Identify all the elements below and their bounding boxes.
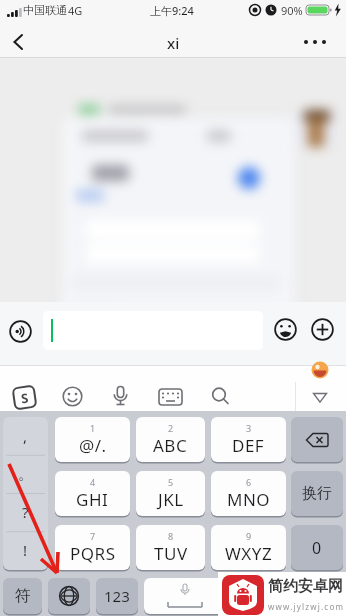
staticText: 中国联通 (23, 3, 67, 17)
button[interactable]: 6 (211, 471, 286, 516)
button[interactable]: 8 (136, 525, 205, 570)
button[interactable] (311, 318, 334, 341)
button[interactable] (274, 318, 297, 341)
staticText: 简约安卓网 (268, 577, 343, 596)
staticText: 1 (90, 422, 96, 434)
button[interactable]: 1 (55, 417, 130, 462)
staticText: 3 (246, 422, 252, 434)
button[interactable]: 123 (96, 578, 138, 614)
staticText: MNO (227, 488, 271, 511)
button[interactable] (144, 578, 225, 614)
button[interactable]: 2 (136, 417, 205, 462)
button[interactable] (48, 578, 90, 614)
button[interactable]: 0 (291, 525, 343, 570)
staticText: ! (23, 540, 28, 560)
staticText: 8 (168, 530, 174, 542)
staticText: JKL (158, 488, 184, 511)
button[interactable] (312, 392, 328, 404)
button[interactable]: S (10, 383, 39, 412)
button[interactable] (291, 417, 343, 462)
staticText: WXYZ (225, 542, 273, 565)
staticText: 0 (312, 537, 322, 559)
staticText: 2 (168, 422, 174, 434)
button[interactable] (110, 385, 131, 408)
button[interactable] (210, 386, 231, 407)
staticText: 90% (281, 3, 303, 18)
button[interactable]: 3 (211, 417, 286, 462)
staticText: 123 (104, 586, 130, 606)
staticText: 4G (68, 3, 83, 18)
button[interactable]: , (3, 417, 48, 570)
staticText: ABC (153, 434, 188, 457)
button[interactable]: 4 (55, 471, 130, 516)
staticText: PQRS (70, 542, 116, 565)
staticText: xi (167, 33, 180, 53)
button[interactable] (12, 34, 26, 50)
staticText: 7 (90, 530, 96, 542)
staticText: DEF (232, 434, 265, 457)
button[interactable]: 9 (211, 525, 286, 570)
staticText: ? (22, 502, 29, 522)
staticText: S (20, 388, 30, 407)
button[interactable] (43, 311, 263, 350)
button[interactable] (303, 36, 329, 48)
staticText: GHI (76, 488, 109, 511)
staticText: 换行 (302, 484, 332, 503)
button[interactable]: 5 (136, 471, 205, 516)
staticText: @/. (79, 434, 107, 457)
staticText: TUV (154, 542, 188, 565)
staticText: 6 (246, 476, 252, 488)
button[interactable]: 符 (3, 578, 42, 614)
button[interactable] (9, 320, 32, 343)
staticText: 5 (168, 476, 174, 488)
button[interactable] (158, 388, 183, 406)
button[interactable]: 换行 (291, 471, 343, 516)
button[interactable]: 7 (55, 525, 130, 570)
staticText: , (23, 426, 28, 446)
staticText: www.jylzwj.com (268, 601, 345, 612)
staticText: 4 (90, 476, 96, 488)
staticText: 。 (18, 465, 33, 484)
button[interactable] (231, 578, 343, 614)
staticText: 符 (15, 586, 31, 606)
staticText: 上午9:24 (150, 3, 194, 18)
button[interactable] (62, 386, 83, 407)
staticText: 9 (246, 530, 252, 542)
